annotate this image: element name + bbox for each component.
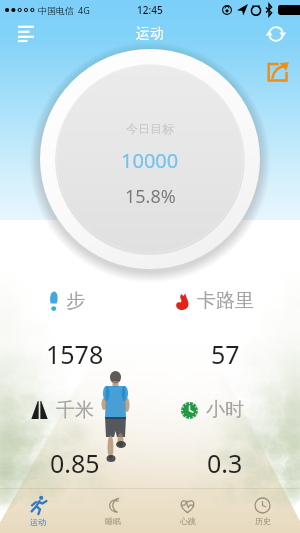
button[interactable]: Refresh bbox=[260, 18, 292, 50]
button[interactable]: Menu bbox=[8, 16, 44, 52]
button[interactable]: 睡眠 bbox=[75, 489, 150, 533]
staticText: 卡路里 bbox=[197, 289, 254, 313]
button[interactable]: 千米 bbox=[0, 398, 150, 480]
staticText: 千米 bbox=[56, 398, 94, 422]
staticText: 15.8% bbox=[125, 184, 176, 209]
button[interactable]: 心跳 bbox=[150, 489, 225, 533]
staticText: 57 bbox=[211, 337, 240, 371]
staticText: 小时 bbox=[206, 398, 244, 422]
staticText: 10000 bbox=[121, 147, 179, 174]
button[interactable]: 运动 bbox=[0, 489, 75, 533]
staticText: 0.85 bbox=[50, 446, 100, 480]
staticText: 步 bbox=[66, 289, 85, 313]
staticText: 运动 bbox=[30, 517, 46, 527]
staticText: 4G bbox=[78, 4, 90, 16]
button[interactable]: 小时 bbox=[150, 398, 300, 480]
button[interactable]: 卡路里 bbox=[150, 289, 300, 371]
staticText: 心跳 bbox=[180, 516, 196, 526]
staticText: 1578 bbox=[46, 337, 104, 371]
button[interactable]: 历史 bbox=[225, 489, 300, 533]
staticText: 0.3 bbox=[207, 446, 243, 480]
staticText: 运动 bbox=[136, 25, 164, 43]
staticText: 12:45 bbox=[137, 3, 163, 17]
button[interactable]: 步 bbox=[0, 289, 150, 371]
staticText: 今日目标 bbox=[126, 121, 174, 136]
staticText: 睡眠 bbox=[105, 516, 121, 526]
staticText: 历史 bbox=[255, 516, 271, 526]
button[interactable]: Share bbox=[262, 56, 292, 86]
staticText: 中国电信 bbox=[38, 5, 74, 16]
